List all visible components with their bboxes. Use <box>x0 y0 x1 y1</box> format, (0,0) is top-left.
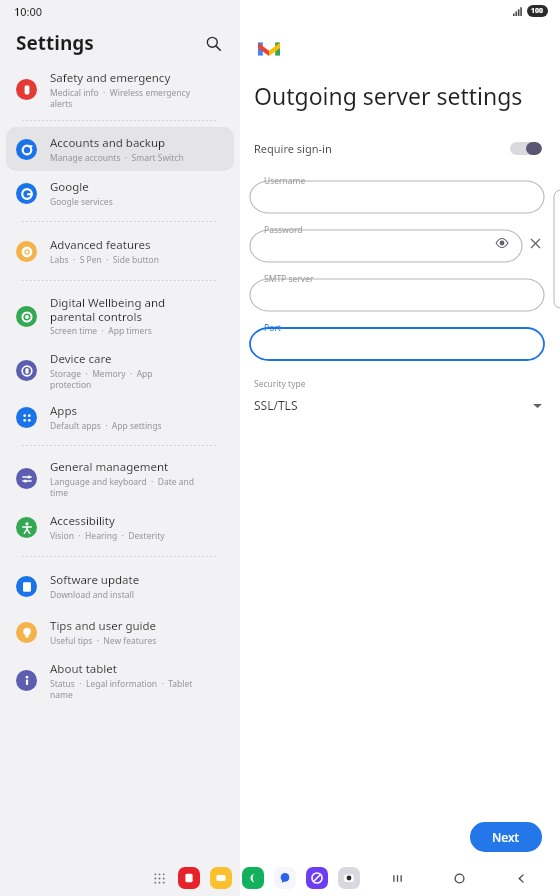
staticText: SSL/TLS <box>254 397 298 413</box>
staticText: Medical info · Wireless emergency alerts <box>50 87 191 109</box>
staticText: 100 <box>531 6 544 16</box>
button[interactable]: Accessibility <box>0 504 240 550</box>
staticText: Default apps · App settings <box>50 420 162 432</box>
button[interactable]: Google <box>0 171 240 215</box>
button[interactable]: Show password <box>494 235 510 251</box>
staticText: Username <box>264 175 306 187</box>
button[interactable]: Security type <box>254 378 542 413</box>
button[interactable]: recents <box>384 865 410 891</box>
staticText: Device care <box>50 351 112 367</box>
button[interactable]: camera <box>338 867 360 889</box>
staticText: Settings <box>16 30 94 56</box>
button[interactable]: Port <box>250 322 544 360</box>
staticText: Download and install <box>50 589 134 601</box>
staticText: About tablet <box>50 661 117 677</box>
staticText: Useful tips · New features <box>50 635 157 647</box>
button[interactable]: Search <box>198 28 228 58</box>
staticText: 10:00 <box>14 4 43 19</box>
button[interactable]: Password <box>250 224 522 262</box>
button[interactable]: files <box>210 867 232 889</box>
button[interactable]: Safety and emergency <box>0 64 240 114</box>
button[interactable]: SMTP server <box>250 273 544 311</box>
button[interactable]: Tips and user guide <box>0 609 240 655</box>
button[interactable]: Accounts and backup <box>6 127 234 171</box>
staticText: Safety and emergency <box>50 70 171 86</box>
button[interactable]: phone <box>242 867 264 889</box>
button[interactable]: Username <box>250 175 544 213</box>
button[interactable]: home <box>446 865 472 891</box>
button[interactable]: Apps <box>0 395 240 439</box>
staticText: Security type <box>254 378 306 390</box>
button[interactable]: Next <box>470 822 542 852</box>
staticText: Status · Legal information · Tablet name <box>50 678 193 700</box>
staticText: Digital Wellbeing and parental controls <box>50 295 166 324</box>
button[interactable]: All apps <box>148 867 170 889</box>
staticText: Google services <box>50 196 113 208</box>
staticText: Port <box>264 322 281 334</box>
button[interactable]: back <box>508 865 534 891</box>
staticText: Outgoing server settings <box>254 80 523 111</box>
staticText: Next <box>492 829 520 845</box>
staticText: Accessibility <box>50 513 115 529</box>
button[interactable]: Require sign-in <box>254 135 542 161</box>
staticText: Advanced features <box>50 237 151 253</box>
staticText: Vision · Hearing · Dexterity <box>50 530 165 542</box>
button[interactable]: Digital Wellbeing and parental controls <box>0 287 240 345</box>
button[interactable]: msg <box>274 867 296 889</box>
staticText: Google <box>50 179 89 195</box>
button[interactable]: Software update <box>0 563 240 609</box>
staticText: Labs · S Pen · Side button <box>50 254 159 266</box>
staticText: Accounts and backup <box>50 135 166 151</box>
staticText: Software update <box>50 572 140 588</box>
staticText: Password <box>264 224 303 236</box>
staticText: Require sign-in <box>254 141 332 156</box>
button[interactable]: Advanced features <box>0 228 240 274</box>
staticText: Apps <box>50 403 78 419</box>
staticText: General management <box>50 459 169 475</box>
staticText: Screen time · App timers <box>50 325 152 337</box>
staticText: Manage accounts · Smart Switch <box>50 152 184 164</box>
button[interactable]: Clear <box>526 234 544 252</box>
button[interactable]: General management <box>0 452 240 504</box>
button[interactable]: About tablet <box>0 655 240 705</box>
staticText: Tips and user guide <box>50 618 157 634</box>
staticText: Language and keyboard · Date and time <box>50 476 195 498</box>
button[interactable]: Device care <box>0 345 240 395</box>
button[interactable]: browser <box>306 867 328 889</box>
button[interactable]: note <box>178 867 200 889</box>
staticText: Storage · Memory · App protection <box>50 368 153 390</box>
staticText: SMTP server <box>264 273 314 285</box>
